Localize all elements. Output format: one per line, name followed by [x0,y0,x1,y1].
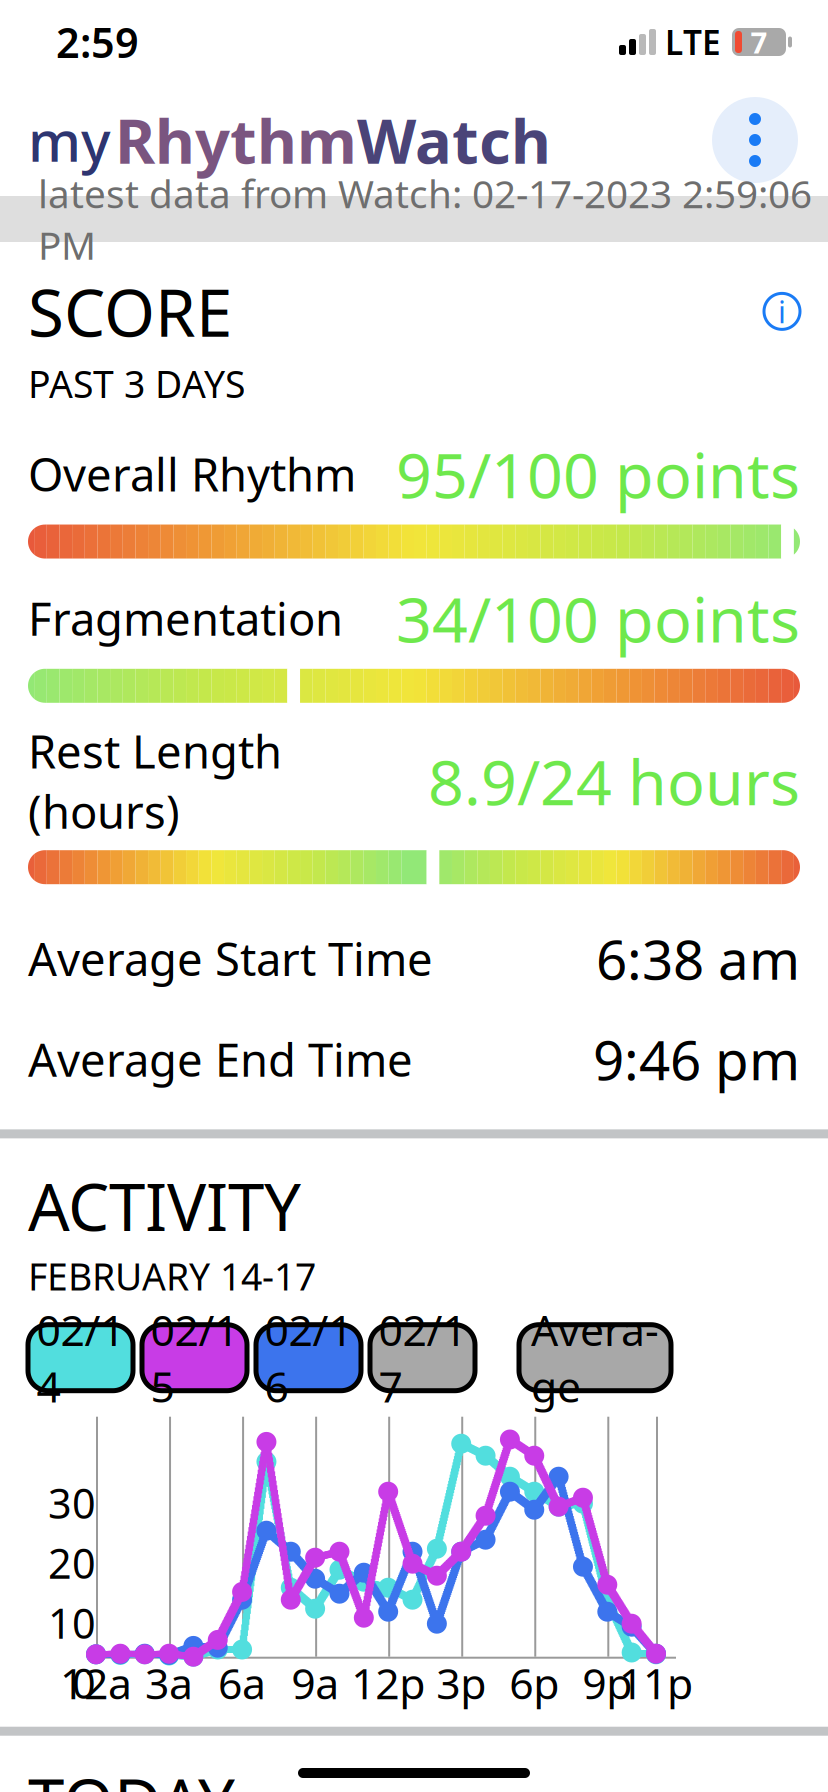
staticText: Fragmentation [28,588,343,648]
button[interactable]: Average [519,1325,671,1391]
staticText: Average [531,1301,659,1414]
staticText: 12p [351,1654,425,1711]
button[interactable]: 02/17 [370,1325,475,1391]
staticText: 30 [48,1475,96,1530]
staticText: Watch [357,99,551,181]
staticText: ACTIVITY [28,1162,301,1249]
staticText: 6p [509,1654,559,1711]
staticText: 7 [750,22,767,61]
staticText: 02/15 [150,1301,238,1414]
staticText: 0 [72,1655,96,1710]
staticText: SCORE [28,268,232,355]
staticText: 9p [582,1654,632,1711]
staticText: Average Start Time [28,928,433,989]
staticText: Average End Time [28,1029,413,1089]
staticText: 3a [145,1654,193,1711]
staticText: 34/100 points [396,577,800,660]
staticText: 12a [60,1654,132,1711]
button[interactable]: Score information [764,293,800,329]
staticText: 9a [291,1654,339,1711]
button[interactable]: 02/14 [28,1325,133,1391]
button[interactable]: More options [712,97,798,183]
staticText: my [28,103,111,177]
staticText: 9:46 pm [593,1023,800,1095]
staticText: Overall Rhythm [28,444,356,504]
staticText: TODAY [28,1758,235,1792]
staticText: 02/17 [378,1301,466,1414]
staticText: 02/14 [36,1301,124,1414]
staticText: 8.9/24 hours [428,739,800,823]
staticText: 6:38 am [596,922,800,995]
staticText: 95/100 points [396,432,800,515]
staticText: FEBRUARY 14-17 [28,1251,316,1301]
staticText: PAST 3 DAYS [28,359,245,408]
staticText: 3p [436,1654,486,1711]
staticText: 6a [218,1654,266,1711]
staticText: 2:59 [56,15,139,69]
button[interactable]: 02/16 [256,1325,361,1391]
staticText: Rhythm [115,99,357,181]
staticText: i [778,291,786,332]
staticText: 11p [619,1654,693,1711]
staticText: Rest Length (hours) [28,721,282,841]
staticText: 10 [48,1595,96,1650]
staticText: latest data from Watch: 02-17-2023 2:59:… [38,168,812,270]
button[interactable]: 02/15 [142,1325,247,1391]
staticText: LTE [665,20,721,64]
staticText: 02/16 [264,1301,352,1414]
staticText: 20 [48,1535,96,1590]
